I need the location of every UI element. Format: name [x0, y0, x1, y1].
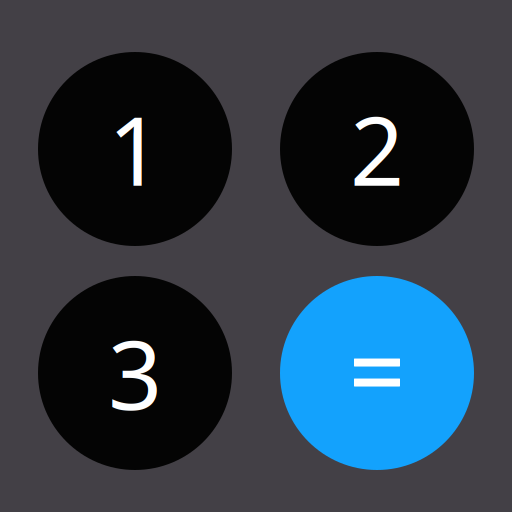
staticText: 3	[108, 310, 162, 436]
button[interactable]: 3	[38, 276, 232, 470]
staticText: 2	[350, 86, 404, 212]
button[interactable]: 2	[280, 52, 474, 246]
button[interactable]: 1	[38, 52, 232, 246]
button[interactable]: Equals	[280, 276, 474, 470]
staticText: 1	[108, 86, 162, 212]
